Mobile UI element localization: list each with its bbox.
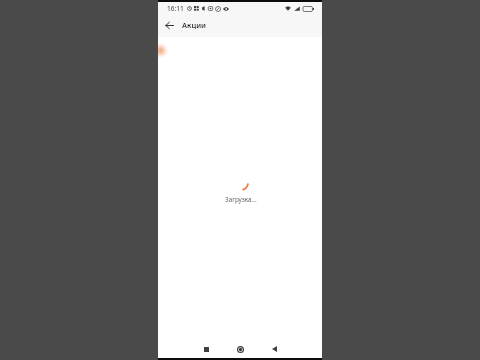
button[interactable]: Главный экран <box>232 341 248 357</box>
button[interactable]: Индикатор акции <box>158 43 168 58</box>
staticText: Акции <box>182 20 206 30</box>
staticText: 16:11 <box>167 4 184 13</box>
button[interactable]: Назад <box>161 17 177 33</box>
button[interactable]: Недавние приложения <box>198 341 214 357</box>
button[interactable]: Назад <box>266 341 282 357</box>
staticText: Загрузка... <box>225 195 257 204</box>
